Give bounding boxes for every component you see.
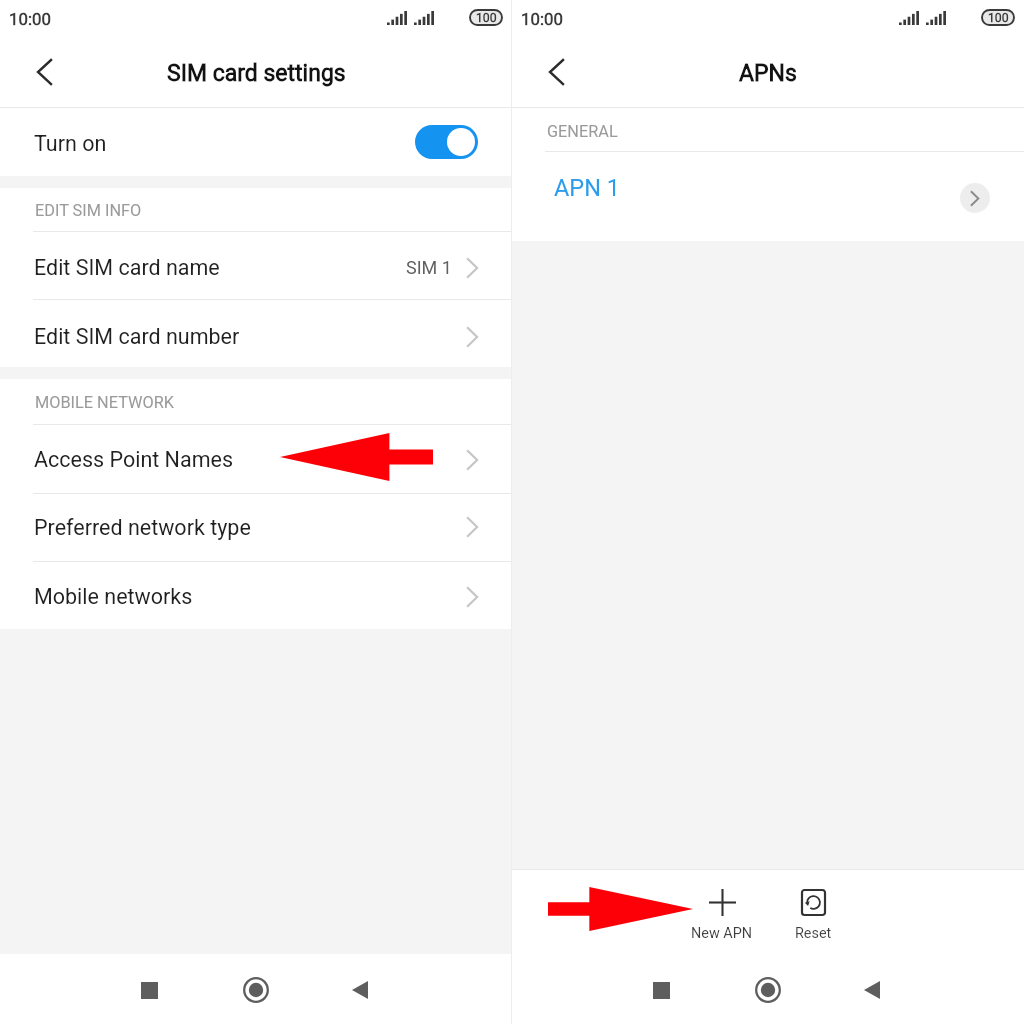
button[interactable]: Turn on	[415, 125, 478, 159]
staticText: SIM card settings	[167, 60, 346, 87]
staticText: GENERAL	[547, 122, 618, 141]
staticText: EDIT SIM INFO	[35, 201, 142, 220]
staticText: MOBILE NETWORK	[35, 393, 174, 412]
staticText: SIM 1	[406, 257, 452, 278]
staticText: Mobile networks	[34, 584, 193, 609]
staticText: 100	[476, 11, 497, 25]
button[interactable]: Edit SIM card name	[0, 232, 512, 300]
staticText: APNs	[739, 60, 797, 87]
staticText: APN 1	[554, 174, 620, 202]
button[interactable]: Edit SIM card number	[0, 300, 512, 367]
button[interactable]: Edit APN 1	[960, 183, 990, 213]
staticText: Edit SIM card name	[34, 255, 220, 280]
button[interactable]: Mobile networks	[0, 562, 512, 629]
button[interactable]: Recents	[96, 954, 202, 1024]
staticText: Preferred network type	[34, 515, 251, 540]
button[interactable]: Access Point Names	[0, 425, 512, 494]
staticText: Reset	[795, 925, 832, 942]
staticText: New APN	[691, 925, 753, 942]
button[interactable]: Home	[714, 954, 821, 1024]
button[interactable]: New APN	[677, 870, 767, 954]
button[interactable]: Back	[0, 36, 66, 107]
staticText: 10:00	[521, 9, 563, 29]
button[interactable]: Back	[821, 954, 928, 1024]
staticText: Turn on	[34, 131, 107, 156]
staticText: Edit SIM card number	[34, 324, 240, 349]
staticText: 10:00	[9, 9, 51, 29]
button[interactable]: Turn on	[0, 108, 512, 176]
staticText: Access Point Names	[34, 447, 234, 472]
staticText: 100	[988, 11, 1009, 25]
button[interactable]: Back	[512, 36, 578, 107]
button[interactable]: Preferred network type	[0, 494, 512, 562]
button[interactable]: Home	[202, 954, 309, 1024]
button[interactable]: Back	[309, 954, 416, 1024]
button[interactable]: Recents	[608, 954, 714, 1024]
button[interactable]: APN 1	[512, 152, 1024, 241]
button[interactable]: Reset	[773, 870, 853, 954]
